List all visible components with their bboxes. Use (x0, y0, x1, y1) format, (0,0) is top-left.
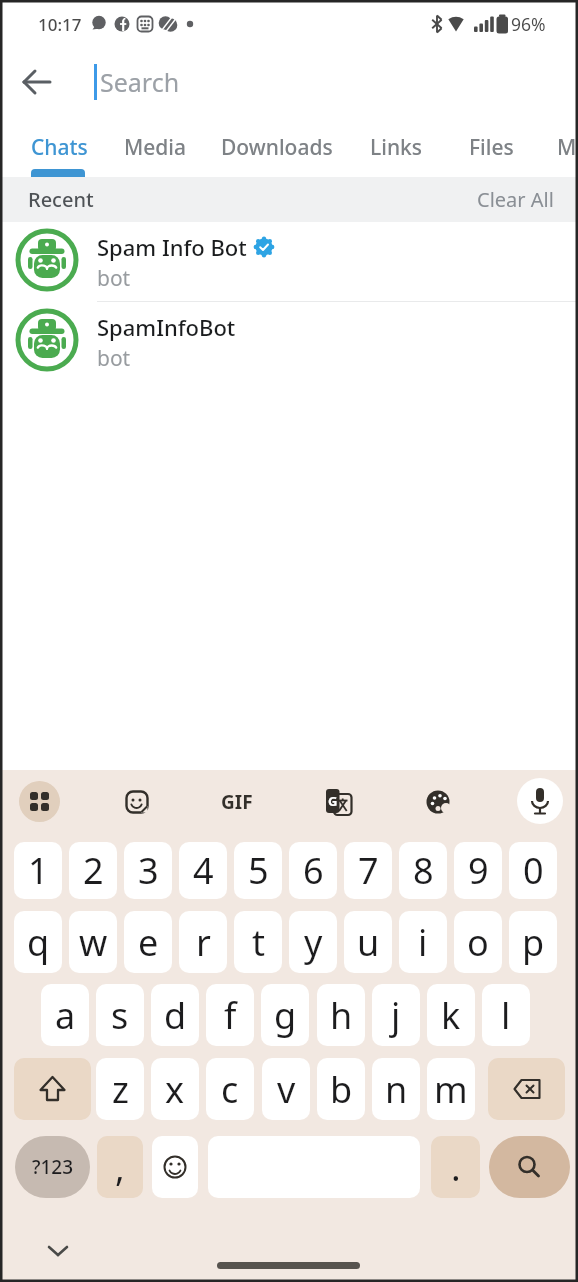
staticText: w (79, 918, 108, 967)
button[interactable]: p (509, 911, 557, 973)
button[interactable]: h (317, 984, 365, 1046)
button[interactable]: m (427, 1058, 475, 1120)
staticText: i (418, 918, 428, 967)
staticText: Chats (31, 133, 88, 162)
staticText: 2 (83, 846, 104, 895)
button[interactable]: 2 (69, 842, 117, 899)
staticText: ?123 (32, 1154, 74, 1180)
staticText: . (451, 1143, 461, 1192)
button[interactable]: d (151, 984, 199, 1046)
button[interactable]: t (234, 911, 282, 973)
button[interactable] (489, 1136, 570, 1198)
button[interactable]: 1 (14, 842, 62, 899)
button[interactable]: Files (451, 124, 531, 170)
button[interactable]: n (372, 1058, 420, 1120)
button[interactable] (40, 1235, 76, 1265)
button[interactable]: SpamInfoBot (0, 302, 578, 382)
staticText: f (224, 991, 237, 1040)
button[interactable]: 7 (344, 842, 392, 899)
button[interactable]: 6 (289, 842, 337, 899)
staticText: s (111, 991, 129, 1040)
button[interactable]: y (289, 911, 337, 973)
staticText: z (112, 1065, 129, 1114)
staticText: Clear All (477, 186, 554, 213)
staticText: 6 (303, 846, 324, 895)
button[interactable]: v (262, 1058, 310, 1120)
button[interactable]: . (431, 1136, 480, 1198)
staticText: Links (370, 133, 422, 162)
button[interactable]: Chats (19, 124, 99, 170)
button[interactable] (14, 1058, 91, 1120)
staticText: GIF (221, 789, 253, 815)
button[interactable]: i (399, 911, 447, 973)
button[interactable]: 5 (234, 842, 282, 899)
staticText: e (138, 918, 159, 967)
button[interactable]: 8 (399, 842, 447, 899)
button[interactable]: x (151, 1058, 199, 1120)
staticText: n (385, 1065, 408, 1114)
staticText: 9 (468, 846, 489, 895)
button[interactable]: Clear All (438, 177, 554, 222)
button[interactable]: Media (115, 124, 195, 170)
staticText: 8 (413, 846, 434, 895)
button[interactable] (124, 789, 150, 815)
staticText: , (115, 1143, 125, 1192)
button[interactable]: Links (356, 124, 436, 170)
staticText: 4 (193, 846, 214, 895)
button[interactable]: o (454, 911, 502, 973)
button[interactable]: c (206, 1058, 254, 1120)
button[interactable]: w (69, 911, 117, 973)
button[interactable]: j (372, 984, 420, 1046)
staticText: g (274, 991, 297, 1040)
button[interactable] (425, 789, 452, 815)
staticText: h (330, 991, 353, 1040)
button[interactable]: g (261, 984, 309, 1046)
button[interactable]: k (427, 984, 475, 1046)
button[interactable]: 3 (124, 842, 172, 899)
staticText: 7 (358, 846, 379, 895)
button[interactable]: r (179, 911, 227, 973)
button[interactable]: Downloads (212, 124, 342, 170)
staticText: Downloads (221, 133, 333, 162)
button[interactable] (14, 58, 62, 106)
staticText: 96% (511, 12, 546, 36)
button[interactable]: q (14, 911, 62, 973)
staticText: Mus (557, 133, 578, 162)
button[interactable]: 0 (509, 842, 557, 899)
staticText: o (467, 918, 489, 967)
button[interactable]: G (325, 787, 353, 817)
staticText: c (221, 1065, 239, 1114)
button[interactable] (517, 778, 563, 824)
button[interactable]: Mus (557, 124, 578, 170)
button[interactable]: 4 (179, 842, 227, 899)
staticText: t (252, 918, 265, 967)
staticText: q (27, 918, 50, 967)
button[interactable] (19, 781, 60, 822)
button[interactable]: b (317, 1058, 365, 1120)
button[interactable]: a (41, 984, 89, 1046)
staticText: Files (469, 133, 514, 162)
staticText: Spam Info Bot (97, 232, 247, 262)
button[interactable]: l (482, 984, 530, 1046)
button[interactable]: ?123 (15, 1136, 90, 1198)
staticText: b (330, 1065, 353, 1114)
button[interactable]: e (124, 911, 172, 973)
staticText: u (357, 918, 380, 967)
button[interactable]: s (96, 984, 144, 1046)
staticText: j (391, 991, 401, 1040)
staticText: Media (124, 133, 187, 162)
staticText: Search (100, 65, 180, 99)
button[interactable]: , (97, 1136, 143, 1198)
button[interactable]: z (96, 1058, 144, 1120)
staticText: bot (97, 344, 131, 372)
button[interactable] (152, 1136, 198, 1198)
button[interactable]: u (344, 911, 392, 973)
button[interactable] (488, 1058, 565, 1120)
button[interactable]: Spam Info Bot (0, 222, 578, 302)
staticText: 5 (248, 846, 269, 895)
button[interactable]: f (206, 984, 254, 1046)
staticText: d (164, 991, 187, 1040)
button[interactable]: 9 (454, 842, 502, 899)
staticText: y (304, 918, 323, 967)
